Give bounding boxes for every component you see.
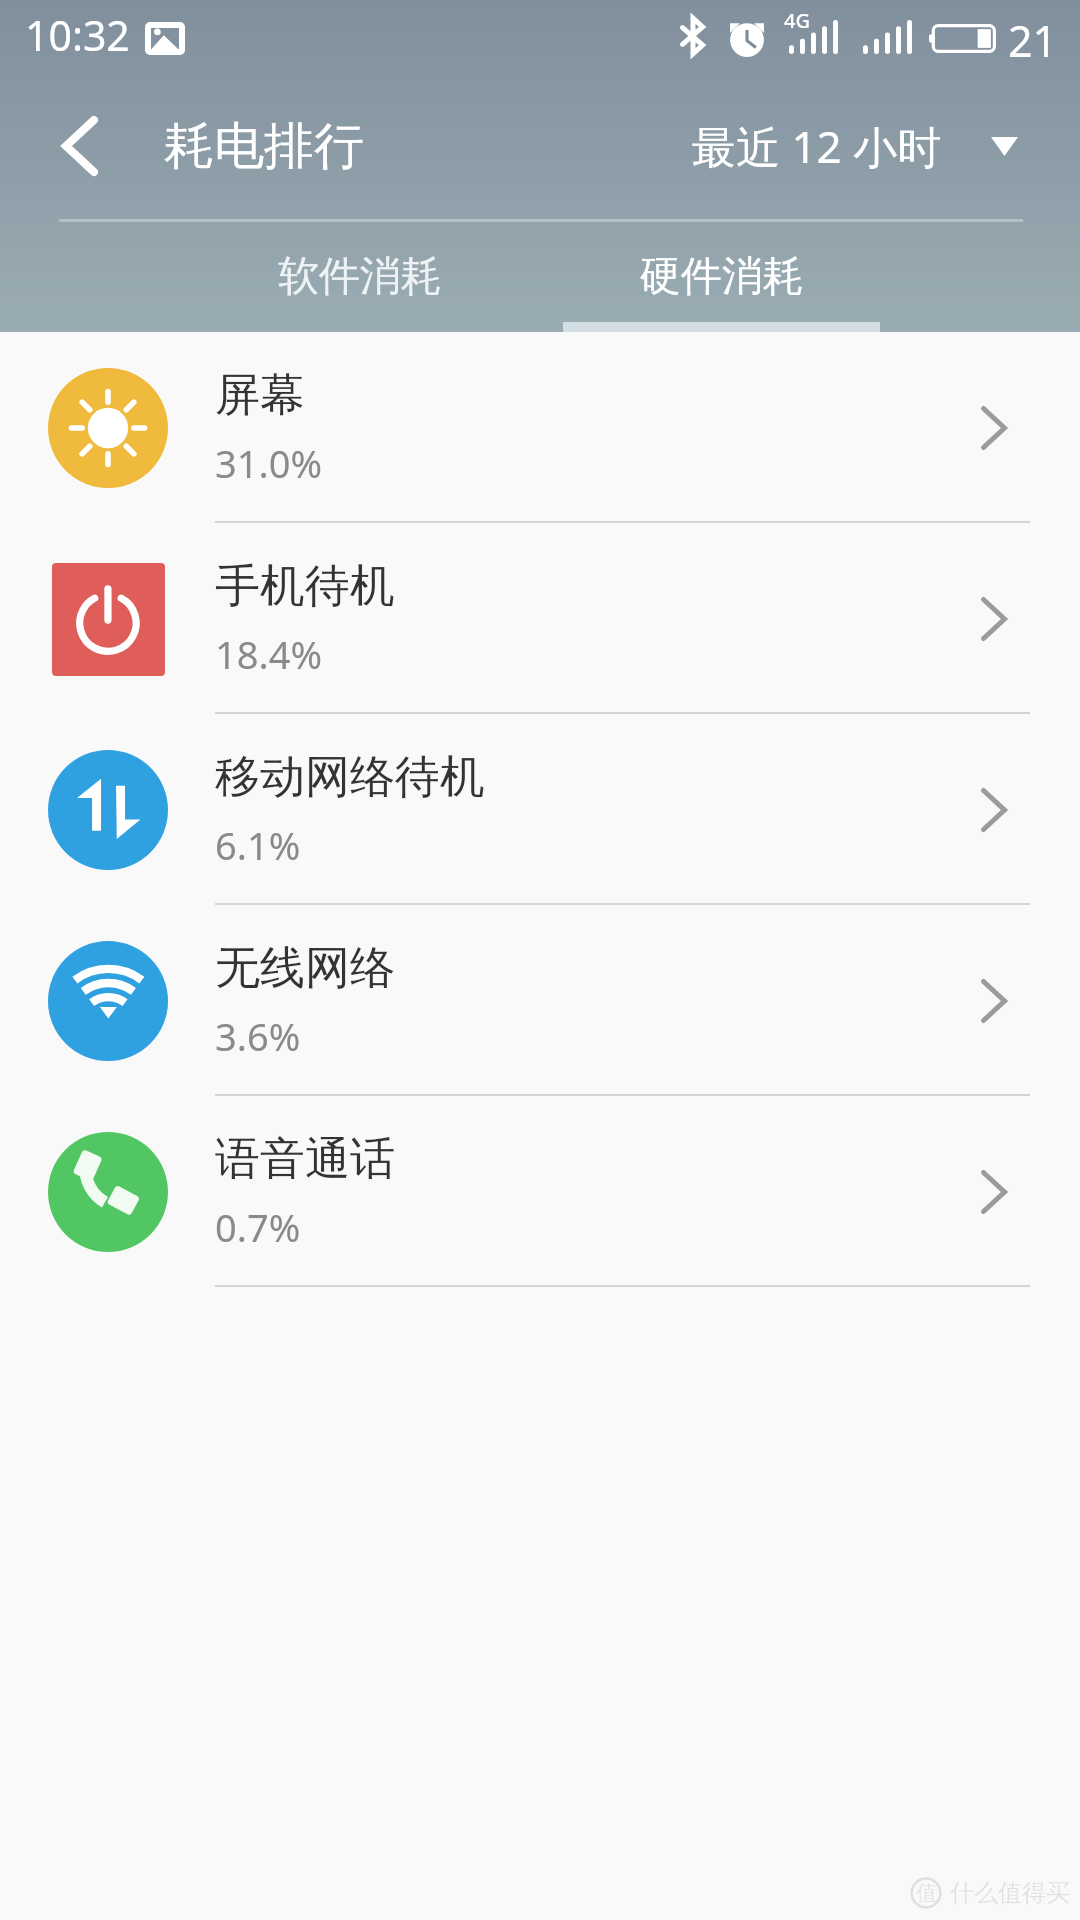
staticText: 硬件消耗 bbox=[640, 251, 804, 303]
button[interactable]: 硬件消耗 bbox=[563, 215, 880, 332]
staticText: 31.0% bbox=[215, 437, 322, 489]
button[interactable]: 无线网络 bbox=[0, 905, 1080, 1096]
staticText: 软件消耗 bbox=[278, 251, 442, 303]
staticText: 最近 12 小时 bbox=[692, 116, 942, 176]
button[interactable]: 手机待机 bbox=[0, 523, 1080, 714]
button[interactable]: 软件消耗 bbox=[201, 215, 518, 332]
staticText: 屏幕 bbox=[215, 367, 305, 424]
staticText: 10:32 bbox=[25, 7, 130, 63]
staticText: 18.4% bbox=[215, 628, 322, 680]
button[interactable]: 屏幕 bbox=[0, 332, 1080, 523]
staticText: 无线网络 bbox=[215, 940, 395, 997]
staticText: 耗电排行 bbox=[164, 115, 364, 178]
staticText: 手机待机 bbox=[215, 558, 395, 615]
staticText: 21 bbox=[1008, 11, 1058, 70]
staticText: 3.6% bbox=[215, 1010, 301, 1062]
staticText: 6.1% bbox=[215, 819, 301, 871]
button[interactable]: 最近 12 小时 bbox=[674, 116, 1080, 176]
staticText: 值 bbox=[916, 1880, 937, 1906]
staticText: 0.7% bbox=[215, 1201, 301, 1253]
staticText: 语音通话 bbox=[215, 1131, 395, 1188]
staticText: 什么值得买 bbox=[950, 1878, 1070, 1908]
button[interactable]: 移动网络待机 bbox=[0, 714, 1080, 905]
staticText: 4G bbox=[784, 7, 810, 34]
staticText: 移动网络待机 bbox=[215, 749, 485, 806]
button[interactable]: Back bbox=[0, 92, 152, 200]
button[interactable]: 语音通话 bbox=[0, 1096, 1080, 1287]
